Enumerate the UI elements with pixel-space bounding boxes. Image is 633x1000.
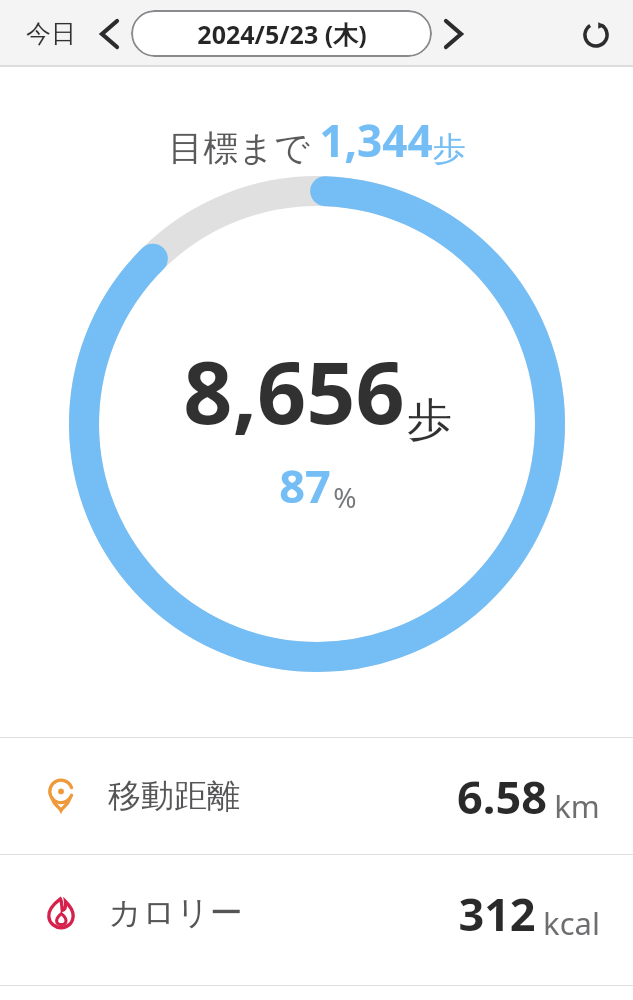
staticText: カロリー bbox=[108, 892, 243, 934]
button[interactable]: Previous day bbox=[88, 11, 131, 57]
staticText: 目標まで bbox=[168, 126, 310, 170]
staticText: kcal bbox=[543, 902, 600, 944]
button[interactable]: 移動距離 bbox=[0, 738, 633, 854]
staticText: 歩 bbox=[433, 128, 466, 170]
button[interactable]: カロリー bbox=[0, 855, 633, 971]
staticText: 今日 bbox=[26, 18, 76, 49]
staticText: % bbox=[333, 478, 357, 516]
staticText: 1,344 bbox=[319, 110, 433, 170]
staticText: 6.58 bbox=[457, 766, 547, 827]
staticText: 歩 bbox=[407, 392, 452, 449]
staticText: 312 bbox=[458, 883, 536, 944]
button[interactable]: Next day bbox=[432, 11, 475, 57]
button[interactable]: 2024/5/23 (木) bbox=[131, 10, 432, 57]
button[interactable]: Refresh bbox=[573, 11, 619, 57]
staticText: km bbox=[554, 785, 600, 827]
staticText: 8,656 bbox=[183, 332, 405, 449]
staticText: 移動距離 bbox=[108, 775, 240, 817]
button[interactable]: 今日 bbox=[14, 10, 88, 57]
staticText: 87 bbox=[279, 455, 331, 516]
staticText: 2024/5/23 (木) bbox=[197, 17, 367, 51]
